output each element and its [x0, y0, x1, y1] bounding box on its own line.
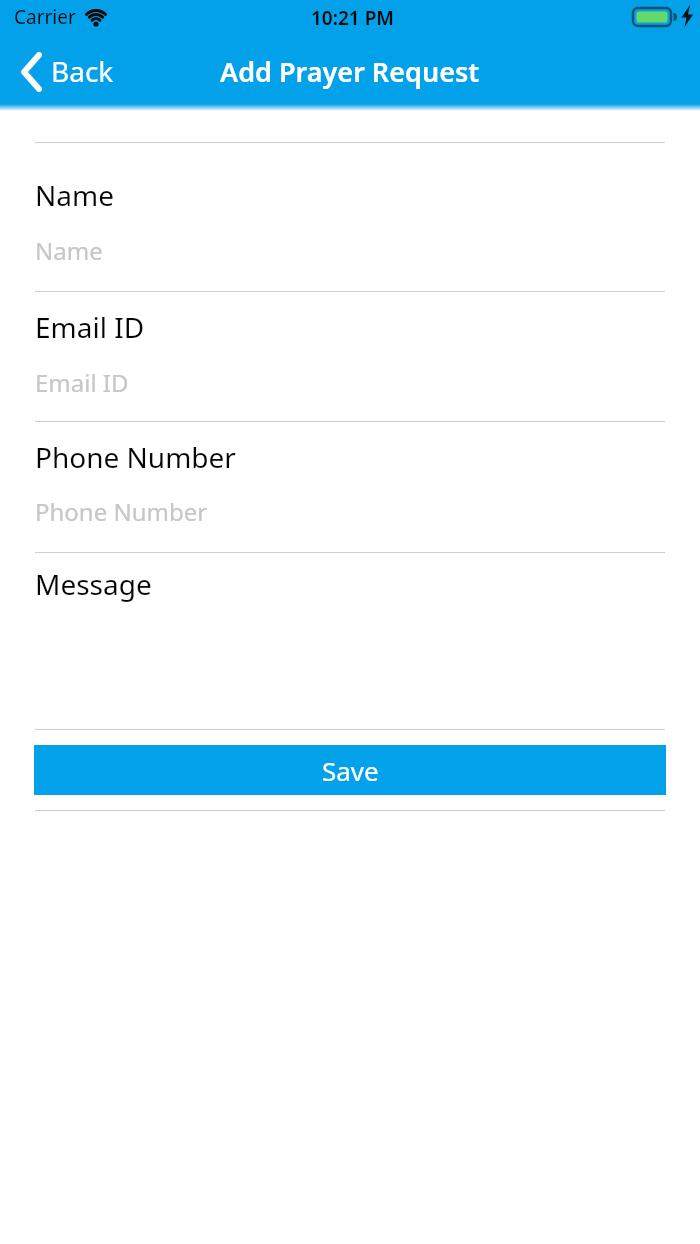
- staticText: Name: [35, 176, 114, 214]
- staticText: Phone Number: [35, 438, 236, 476]
- staticText: Save: [322, 753, 379, 788]
- button[interactable]: Back: [14, 48, 114, 94]
- staticText: Name: [35, 234, 103, 267]
- staticText: Add Prayer Request: [220, 53, 480, 90]
- staticText: Carrier: [14, 4, 76, 30]
- staticText: Back: [51, 52, 114, 90]
- button[interactable]: Save: [34, 745, 666, 795]
- staticText: Message: [35, 565, 152, 603]
- staticText: Email ID: [35, 366, 129, 399]
- staticText: Phone Number: [35, 495, 208, 528]
- staticText: 10:21 PM: [311, 5, 394, 31]
- staticText: Email ID: [35, 308, 145, 346]
